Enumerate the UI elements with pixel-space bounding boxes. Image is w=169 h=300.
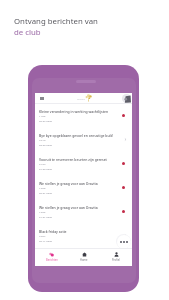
button[interactable]: Kleine verandering in werking wachtlijst…: [35, 104, 132, 128]
staticText: oravita: [77, 97, 85, 100]
staticText: Kleine verandering in werking wachtlijst…: [39, 109, 115, 114]
button[interactable]: Berichten: [35, 252, 68, 262]
button[interactable]: Profile: [120, 93, 132, 104]
staticText: Home: [80, 258, 88, 262]
staticText: 05-01-2025: [39, 191, 53, 194]
staticText: 11:06: [39, 114, 46, 117]
staticText: Berichten: [46, 258, 58, 262]
staticText: 09-03-2025: [39, 143, 53, 146]
button[interactable]: Black friday actie: [35, 224, 132, 248]
button[interactable]: Vooruit te reserveren beurten zijn geres…: [35, 152, 132, 176]
staticText: 14:08: [39, 186, 46, 189]
staticText: We stellen je graag voor aan Oravita: [39, 181, 115, 186]
staticText: 15:07: [39, 234, 46, 237]
staticText: 01-03-2025: [39, 167, 53, 170]
staticText: Bye bye opgeblazen gevoel en onrustige b…: [39, 133, 115, 138]
staticText: Profiel: [112, 258, 120, 262]
staticText: Ontvang berichten van: [14, 16, 98, 27]
button[interactable]: We stellen je graag voor aan Oravita: [35, 176, 132, 200]
staticText: 13:55: [39, 210, 46, 213]
button[interactable]: More options: [117, 235, 131, 249]
staticText: 31-01-2025: [39, 215, 53, 218]
staticText: 30-07-2025: [39, 119, 53, 122]
button[interactable]: Bye bye opgeblazen gevoel en onrustige b…: [35, 128, 132, 152]
staticText: We stellen je graag voor aan Oravita: [39, 205, 115, 210]
staticText: 31:44: [39, 162, 46, 165]
staticText: Black friday actie: [39, 229, 115, 234]
button[interactable]: Profiel: [100, 252, 132, 262]
staticText: Vooruit te reserveren beurten zijn geres…: [39, 157, 115, 162]
staticText: 16:10: [39, 138, 46, 141]
staticText: de club: [14, 27, 41, 38]
staticText: 30-11-2025: [39, 239, 53, 242]
button[interactable]: We stellen je graag voor aan Oravita: [35, 200, 132, 224]
button[interactable]: Menu: [37, 93, 47, 103]
button[interactable]: Home: [68, 252, 100, 262]
